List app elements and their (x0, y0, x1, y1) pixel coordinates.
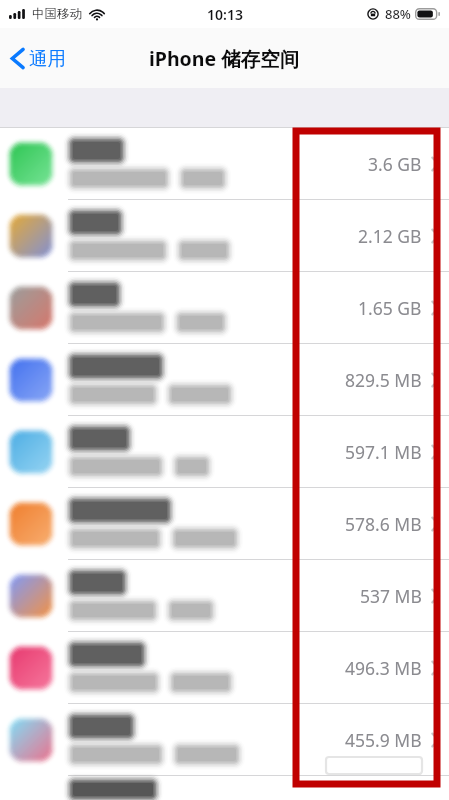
button[interactable]: 537 MB (0, 560, 449, 631)
button[interactable]: 455.9 MB (0, 704, 449, 775)
button[interactable]: 1.65 GB (0, 272, 449, 343)
staticText: 中国移动 (32, 6, 82, 22)
staticText: iPhone 储存空间 (149, 45, 300, 72)
staticText: 通用 (29, 47, 66, 70)
staticText: 829.5 MB (345, 368, 422, 392)
button[interactable]: 3.6 GB (0, 128, 449, 199)
other: Show details (431, 444, 440, 460)
staticText: 455.9 MB (345, 728, 422, 752)
staticText: 578.6 MB (345, 512, 422, 536)
staticText: 88% (385, 5, 411, 23)
other: Show details (431, 300, 440, 316)
button[interactable]: 597.1 MB (0, 416, 449, 487)
staticText: 2.12 GB (358, 224, 422, 248)
staticText: 1.65 GB (358, 296, 422, 320)
staticText: 597.1 MB (345, 440, 422, 464)
staticText: 537 MB (360, 584, 422, 608)
other: Show details (431, 660, 440, 676)
button[interactable]: 578.6 MB (0, 488, 449, 559)
other: Show details (431, 588, 440, 604)
other: Show details (431, 156, 440, 172)
button[interactable]: 2.12 GB (0, 200, 449, 271)
staticText: 496.3 MB (345, 656, 422, 680)
staticText: 10:13 (207, 5, 243, 24)
button[interactable]: 829.5 MB (0, 344, 449, 415)
staticText: 3.6 GB (368, 152, 422, 176)
button[interactable]: 通用 (0, 39, 78, 78)
button[interactable]: 496.3 MB (0, 632, 449, 703)
other: Show details (431, 228, 440, 244)
other: Show details (431, 516, 440, 532)
other: Show details (431, 732, 440, 748)
other: Show details (431, 372, 440, 388)
